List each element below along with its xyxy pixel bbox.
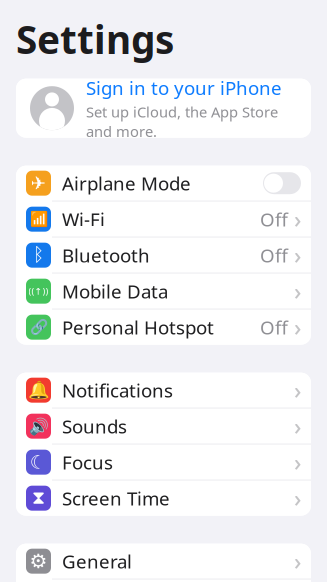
staticText: Screen Time [62, 486, 170, 511]
button[interactable]: Sign in to your iPhone [16, 79, 311, 138]
button[interactable]: 🔗 [16, 310, 311, 345]
staticText: Bluetooth [62, 243, 150, 268]
button[interactable]: ((↑)) [16, 274, 311, 309]
staticText: Wi-Fi [62, 207, 105, 232]
staticText: ⧗ [32, 489, 45, 507]
staticText: ((↑)) [28, 285, 48, 297]
staticText: ☾ [30, 452, 47, 473]
button[interactable]: ᛒ [16, 238, 311, 273]
staticText: 📶 [29, 211, 47, 228]
staticText: 🔗 [29, 319, 47, 336]
staticText: Set up iCloud, the App Store and more. [86, 102, 278, 141]
staticText: Notifications [62, 378, 173, 403]
staticText: 🔔 [27, 380, 49, 400]
staticText: › [294, 411, 301, 441]
staticText: 🔊 [28, 417, 48, 435]
button[interactable]: ☾ [16, 445, 311, 480]
staticText: › [294, 546, 301, 576]
staticText: ᛒ [33, 246, 44, 264]
staticText: General [62, 549, 132, 574]
staticText: ⚙ [29, 550, 47, 572]
button[interactable]: 🔊 [16, 409, 311, 444]
staticText: › [294, 240, 301, 270]
staticText: Focus [62, 450, 113, 475]
staticText: › [294, 204, 301, 234]
staticText: ✈ [30, 173, 46, 194]
staticText: Off [260, 207, 288, 232]
staticText: › [294, 483, 301, 513]
staticText: › [294, 375, 301, 405]
staticText: › [294, 447, 301, 477]
button[interactable]: ⧗ [16, 481, 311, 516]
staticText: Sounds [62, 414, 127, 439]
staticText: Sign in to your iPhone [86, 75, 282, 100]
staticText: Off [260, 243, 288, 268]
button[interactable]: 🔔 [16, 373, 311, 408]
staticText: Mobile Data [62, 279, 168, 304]
staticText: Off [260, 315, 288, 340]
staticText: › [294, 276, 301, 306]
staticText: Personal Hotspot [62, 315, 214, 340]
button[interactable]: 📶 [16, 202, 311, 237]
staticText: › [294, 312, 301, 342]
button[interactable]: ⚙ [16, 544, 311, 579]
staticText: Settings [16, 13, 174, 65]
staticText: Airplane Mode [62, 171, 191, 196]
button[interactable]: ✈ [16, 166, 311, 201]
